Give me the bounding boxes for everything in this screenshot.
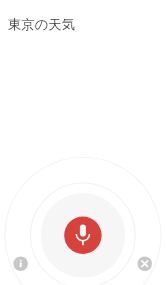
button[interactable]: Info: [13, 257, 28, 272]
staticText: 東京の天気: [8, 16, 75, 33]
button[interactable]: Tap to speak: [64, 217, 101, 254]
button[interactable]: Close: [138, 257, 153, 272]
